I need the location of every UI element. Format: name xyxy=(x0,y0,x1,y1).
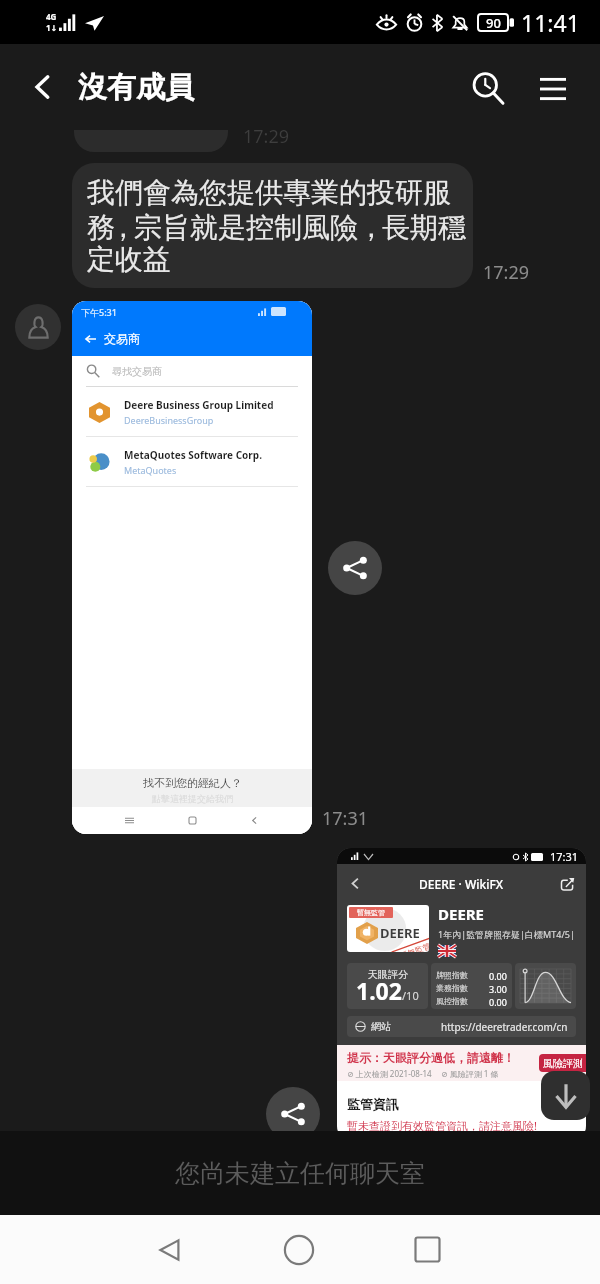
staticText: ， xyxy=(109,210,137,242)
staticText: 17:29 xyxy=(243,124,290,149)
button[interactable]: Search xyxy=(458,48,518,130)
staticText: 提示：天眼評分過低，請遠離！ xyxy=(347,1050,515,1065)
button[interactable]: Share xyxy=(266,1087,320,1141)
staticText: 交易商 xyxy=(104,331,140,346)
staticText: 11:41 xyxy=(521,7,580,38)
staticText: ， xyxy=(357,210,385,242)
staticText: 尋找交易商 xyxy=(112,365,162,378)
staticText: 點擊這裡提交給我們 xyxy=(152,793,233,804)
staticText: MetaQuotes xyxy=(124,464,177,476)
staticText: 宗旨就是控制風險 xyxy=(134,210,358,242)
staticText: 務 xyxy=(87,210,115,242)
staticText: 業務指數 xyxy=(436,983,468,993)
staticText: /10 xyxy=(402,988,419,1003)
staticText: 監管資訊 xyxy=(347,1096,399,1112)
staticText: 您尚未建立任何聊天室 xyxy=(175,1158,425,1189)
staticText: 牌照指數 xyxy=(436,970,468,980)
staticText: 0.00 xyxy=(489,970,507,982)
button[interactable]: Menu xyxy=(523,47,583,130)
button[interactable]: Download xyxy=(541,1071,590,1120)
staticText: 風控指數 xyxy=(436,996,468,1006)
staticText: 17:29 xyxy=(483,260,530,285)
staticText: ⊘ 上次檢測 2021-08-14 xyxy=(347,1068,432,1079)
button[interactable]: Home xyxy=(257,1215,341,1284)
staticText: 天眼評分 xyxy=(368,968,408,981)
staticText: ⊘ 風險評測 1 條 xyxy=(441,1068,499,1079)
staticText: 90 xyxy=(486,14,501,32)
staticText: 沒有成員 xyxy=(78,69,194,106)
staticText: DEERE · WikiFX xyxy=(419,876,504,892)
button[interactable]: Back xyxy=(128,1215,212,1284)
button[interactable]: 我們會為您提供專業的投研服 xyxy=(72,163,473,288)
button[interactable]: 17:31 xyxy=(337,848,586,1140)
staticText: 我們會為您提供專業的投研服 xyxy=(87,175,451,210)
staticText: MetaQuotes Software Corp. xyxy=(124,448,262,462)
staticText: Deere Business Group Limited xyxy=(124,398,274,412)
button[interactable]: 下午5:31 xyxy=(72,301,312,834)
staticText: 暫無監管 xyxy=(398,941,429,952)
staticText: 找不到您的經紀人？ xyxy=(143,776,242,790)
button[interactable] xyxy=(15,304,61,350)
button[interactable]: Share xyxy=(328,541,382,595)
staticText: 1↓ xyxy=(46,22,58,33)
staticText: 網站 xyxy=(371,1020,391,1033)
staticText: DEERE xyxy=(380,924,420,942)
staticText: 1.02 xyxy=(356,975,402,1006)
staticText: 暫未查證到有效監管資訊，請注意風險! xyxy=(347,1118,537,1133)
staticText: https://deeretrader.com/cn xyxy=(441,1020,568,1034)
staticText: DeereBusinessGroup xyxy=(124,414,214,426)
staticText: 長期穩 xyxy=(382,210,466,242)
staticText: 風險評測 xyxy=(543,1057,583,1070)
staticText: 17:31 xyxy=(322,806,369,831)
button[interactable]: Recents xyxy=(385,1215,469,1284)
button[interactable] xyxy=(74,112,228,152)
staticText: 1年內|監管牌照存疑|白標MT4/5|置... xyxy=(438,928,577,940)
staticText: 17:31 xyxy=(550,849,579,864)
button[interactable]: Back xyxy=(16,44,70,130)
staticText: 0.00 xyxy=(489,996,507,1008)
staticText: 3.00 xyxy=(489,983,507,995)
staticText: 定收益 xyxy=(87,242,171,277)
staticText: DEERE xyxy=(438,904,485,924)
staticText: 4G xyxy=(46,11,57,22)
staticText: 暫無監管 xyxy=(357,908,385,917)
staticText: 下午5:31 xyxy=(81,306,117,318)
